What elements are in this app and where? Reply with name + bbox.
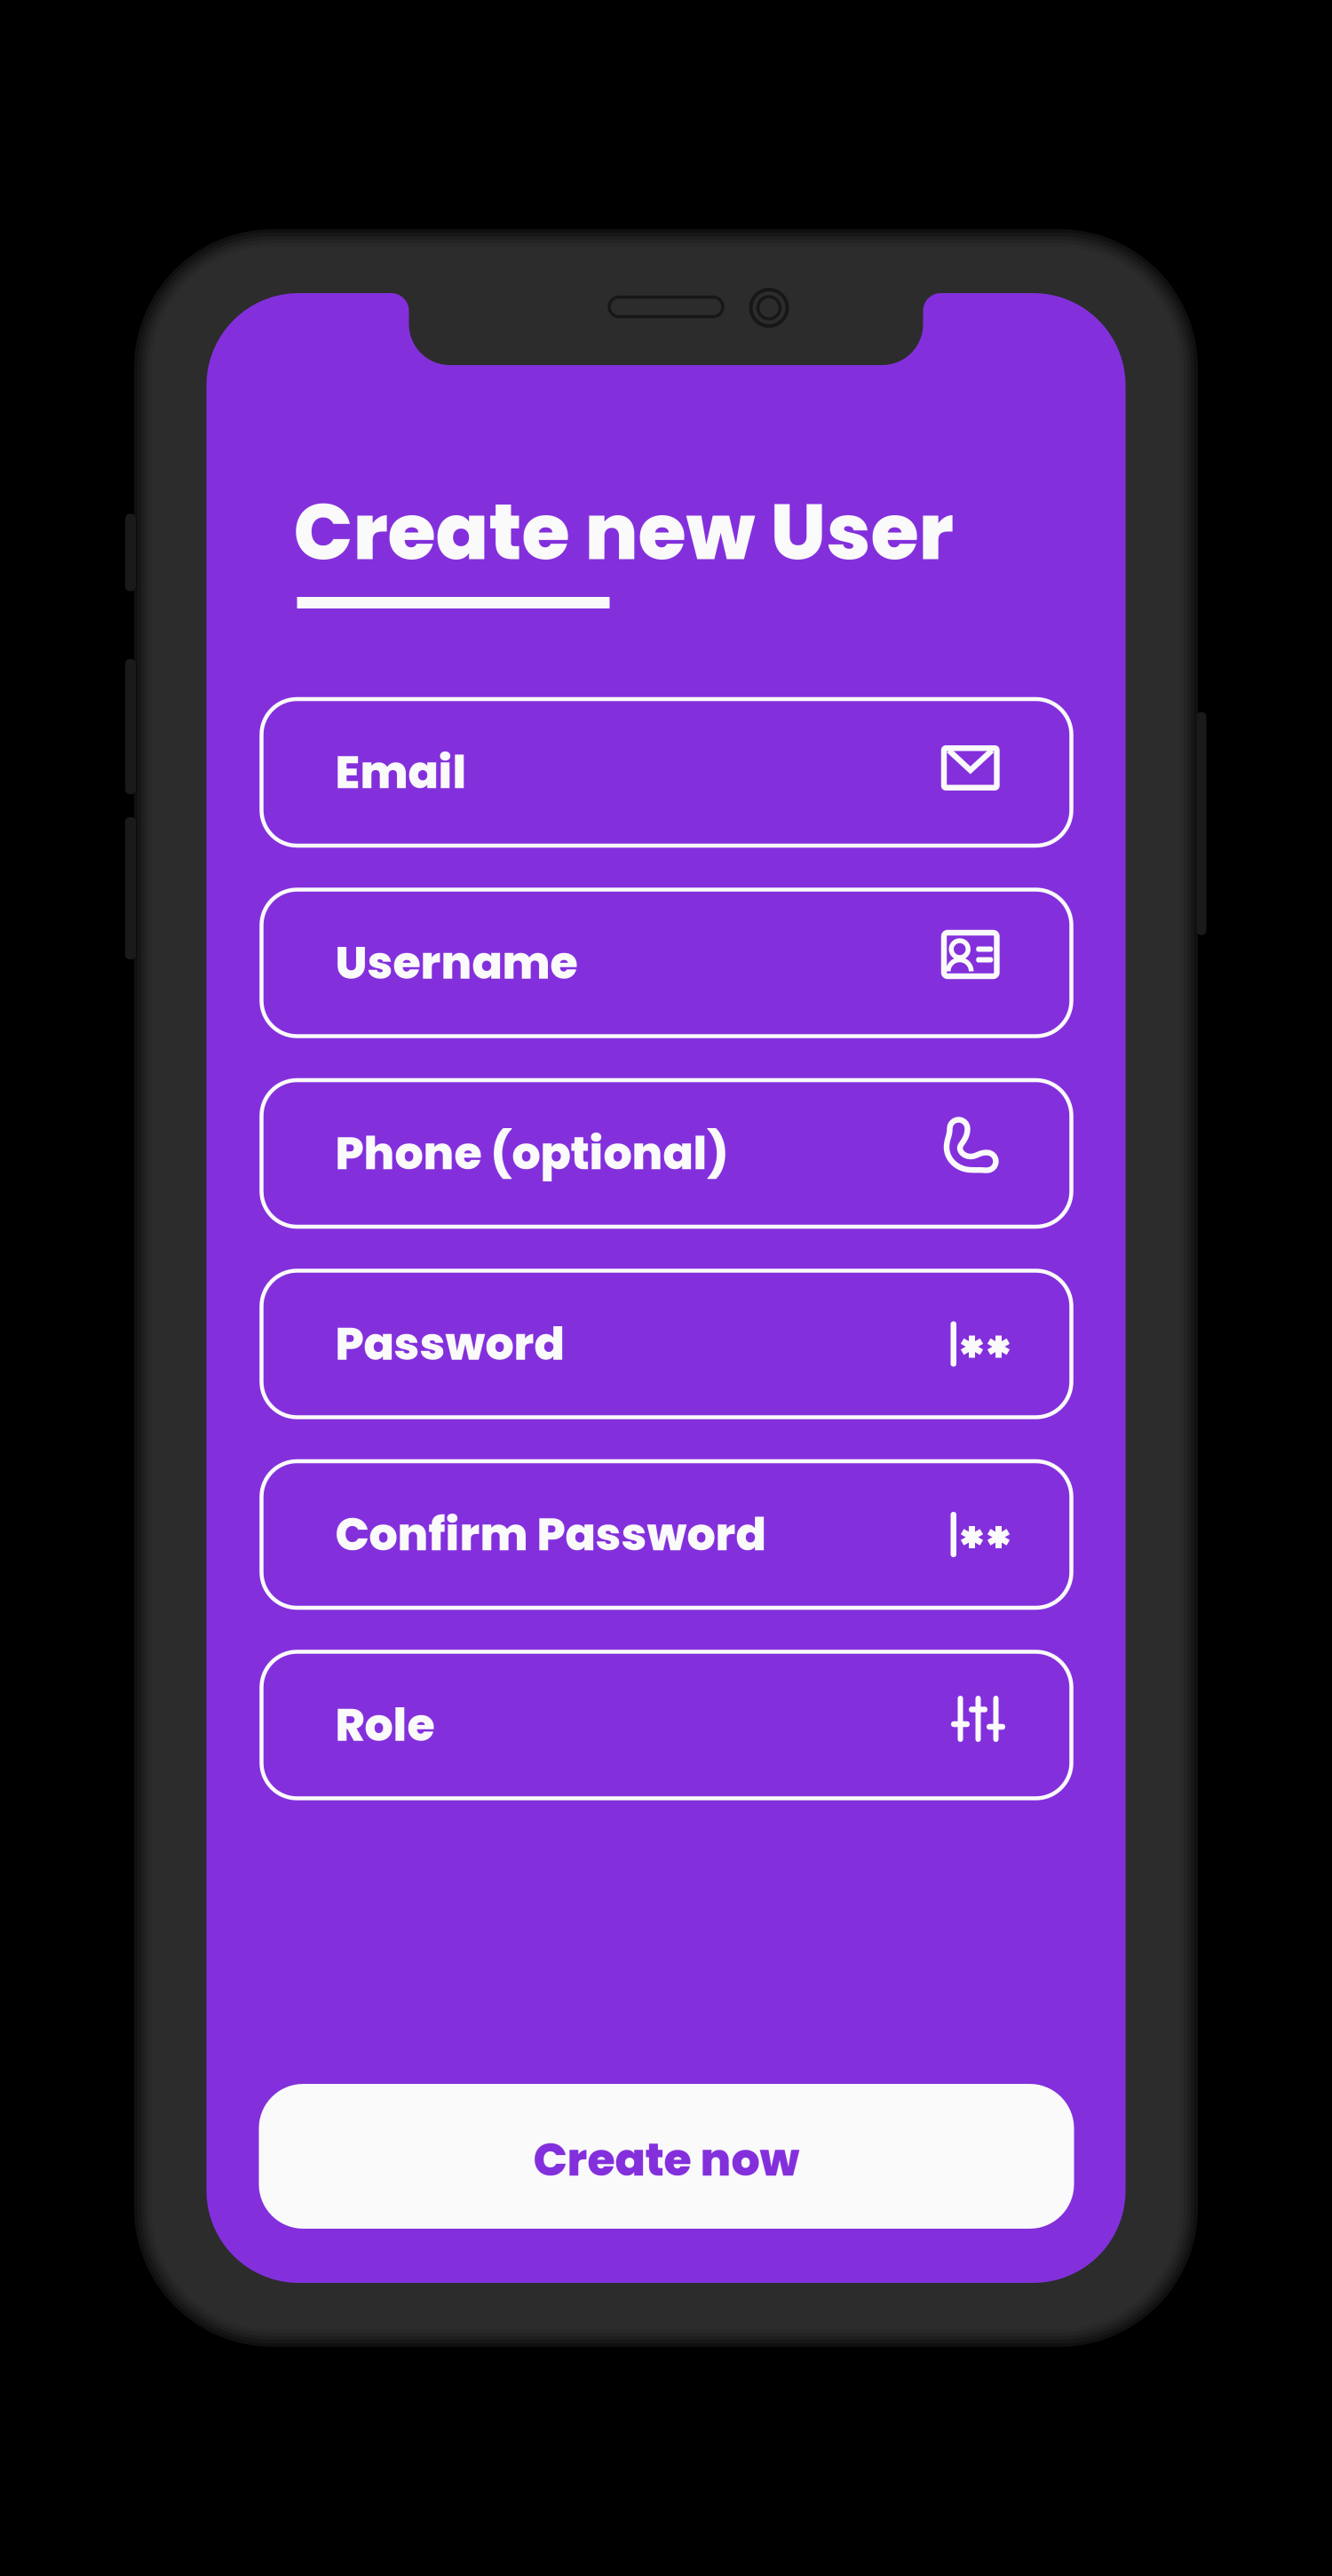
staticText: Email	[335, 741, 467, 804]
button[interactable]: Create now	[259, 2084, 1074, 2229]
staticText: Create now	[533, 2128, 800, 2191]
staticText: Role	[335, 1693, 435, 1756]
staticText: Password	[335, 1312, 564, 1375]
button[interactable]: Password	[262, 1271, 1071, 1417]
button[interactable]: Role	[262, 1652, 1071, 1798]
staticText: Username	[335, 931, 578, 994]
button[interactable]: Phone (optional)	[262, 1080, 1071, 1227]
button[interactable]: Username	[262, 890, 1071, 1036]
button[interactable]: Confirm Password	[262, 1461, 1071, 1608]
button[interactable]: Email	[262, 699, 1071, 846]
staticText: Create new User	[293, 477, 953, 586]
staticText: Confirm Password	[335, 1503, 766, 1566]
staticText: Phone (optional)	[335, 1122, 729, 1185]
